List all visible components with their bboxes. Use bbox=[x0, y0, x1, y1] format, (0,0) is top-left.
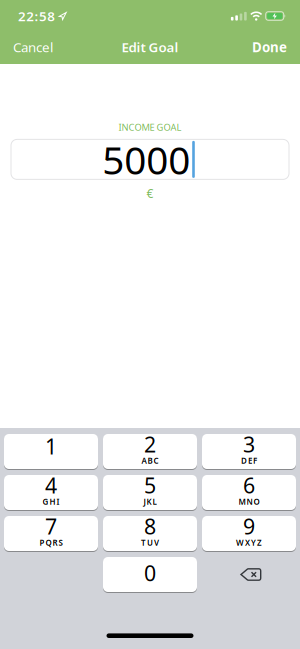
staticText: 0 bbox=[144, 559, 156, 587]
staticText: DEF bbox=[241, 455, 257, 466]
staticText: TUV bbox=[141, 537, 159, 548]
staticText: ABC bbox=[141, 455, 158, 466]
staticText: 4 bbox=[45, 471, 57, 499]
staticText: 2 bbox=[144, 430, 156, 458]
staticText: Done bbox=[252, 38, 287, 56]
staticText: JKL bbox=[143, 496, 156, 507]
staticText: GHI bbox=[42, 496, 59, 507]
staticText: Cancel bbox=[13, 38, 53, 56]
button[interactable]: 6 bbox=[202, 475, 296, 510]
staticText: 9 bbox=[243, 512, 255, 540]
staticText: 3 bbox=[243, 430, 255, 458]
staticText: 6 bbox=[243, 471, 255, 499]
staticText: PQRS bbox=[39, 537, 62, 548]
staticText: Edit Goal bbox=[121, 38, 178, 56]
button[interactable]: 4 bbox=[4, 475, 98, 510]
staticText: 8 bbox=[144, 512, 156, 540]
staticText: 7 bbox=[45, 512, 57, 540]
staticText: MNO bbox=[238, 496, 259, 507]
button[interactable]: Done bbox=[252, 38, 287, 56]
button[interactable]: 1 bbox=[4, 434, 98, 469]
button[interactable]: 7 bbox=[4, 516, 98, 551]
staticText: WXYZ bbox=[236, 537, 262, 548]
button[interactable]: 5 bbox=[103, 475, 197, 510]
staticText: 5000 bbox=[102, 134, 190, 185]
staticText: 22:58 bbox=[18, 7, 55, 25]
button[interactable]: 8 bbox=[103, 516, 197, 551]
staticText: 1 bbox=[45, 432, 57, 460]
button[interactable]: 2 bbox=[103, 434, 197, 469]
button[interactable]: Delete bbox=[202, 557, 296, 592]
button[interactable]: 9 bbox=[202, 516, 296, 551]
staticText: 5 bbox=[144, 471, 156, 499]
button[interactable]: Income goal amount bbox=[0, 139, 300, 179]
button[interactable]: Cancel bbox=[13, 38, 53, 56]
staticText: INCOME GOAL bbox=[118, 121, 181, 133]
staticText: € bbox=[146, 185, 153, 201]
button[interactable]: 0 bbox=[103, 557, 197, 592]
button[interactable]: 3 bbox=[202, 434, 296, 469]
